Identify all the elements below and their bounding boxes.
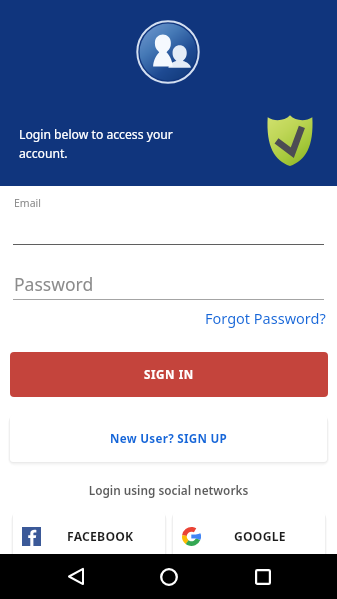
staticText: New User? SIGN UP: [110, 431, 228, 447]
button[interactable]: New User? SIGN UP: [10, 415, 327, 462]
button[interactable]: SIGN IN: [10, 352, 328, 397]
button[interactable]: Forgot Password?: [205, 306, 337, 330]
button[interactable]: Recent apps: [242, 554, 283, 599]
staticText: FACEBOOK: [67, 528, 134, 545]
staticText: GOOGLE: [234, 528, 286, 545]
button[interactable]: Home: [148, 554, 189, 599]
button[interactable]: Back: [55, 554, 96, 599]
staticText: Email: [14, 196, 41, 210]
other: Account: [136, 20, 200, 84]
button[interactable]: Google: [173, 512, 325, 560]
staticText: SIGN IN: [144, 367, 194, 383]
staticText: Password: [14, 272, 94, 296]
other: Google: [182, 527, 201, 546]
staticText: Login using social networks: [0, 482, 337, 498]
staticText: Login below to access your account.: [19, 126, 173, 161]
button[interactable]: FACEBOOK: [13, 512, 165, 560]
other: Secure: [266, 115, 314, 166]
